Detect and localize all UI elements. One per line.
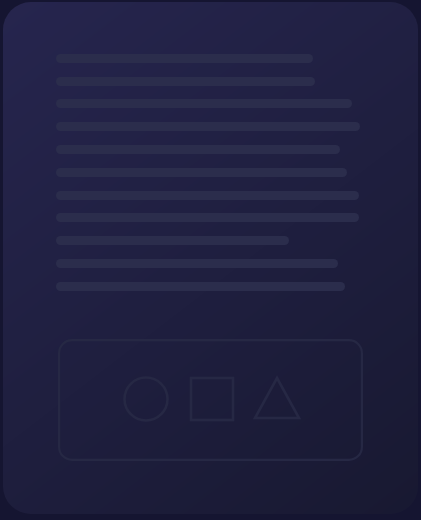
button[interactable]: Square tool: [188, 375, 236, 423]
other: Document placeholder content: [0, 0, 421, 520]
button[interactable]: [3, 2, 418, 514]
button[interactable]: Circle tool: [122, 375, 170, 423]
button[interactable]: Triangle tool: [253, 375, 301, 423]
